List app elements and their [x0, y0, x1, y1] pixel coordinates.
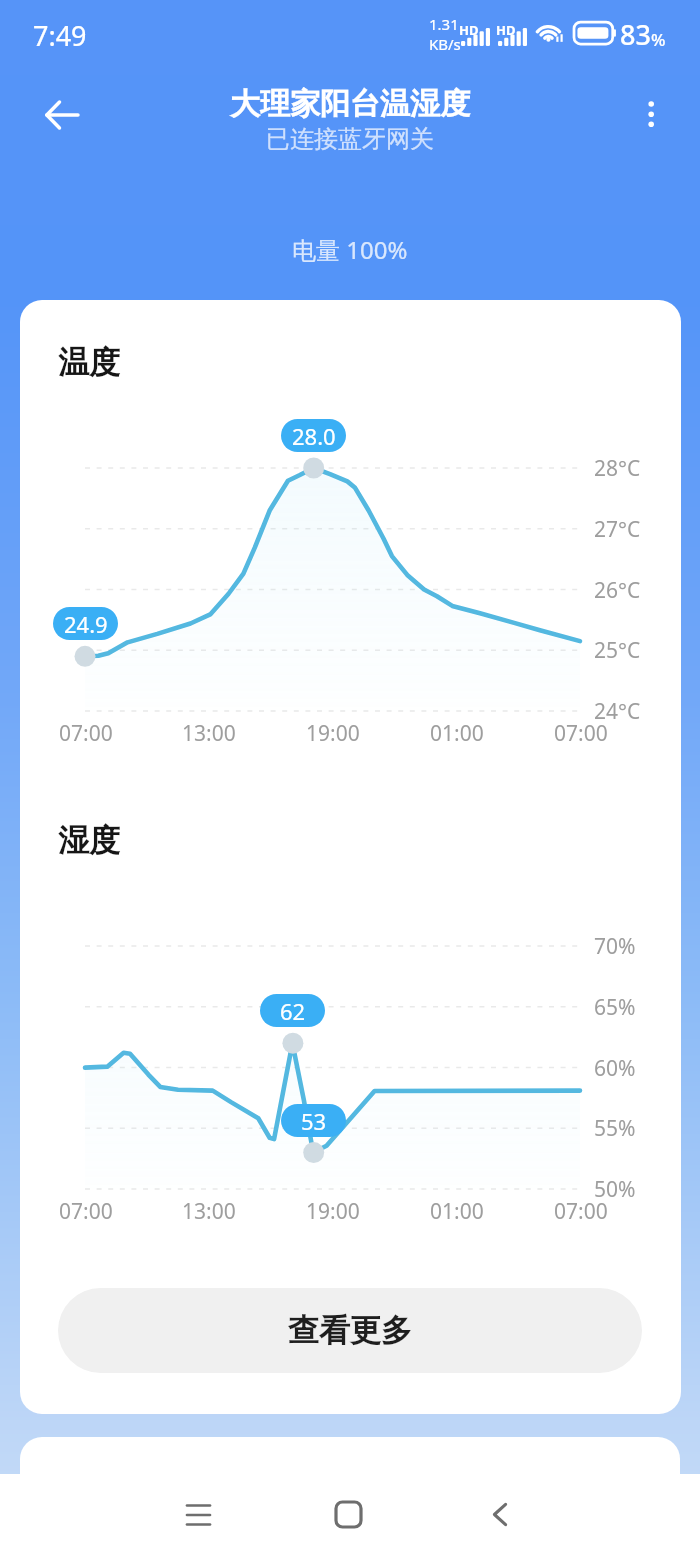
button[interactable]: Recents: [123, 1474, 273, 1555]
staticText: 13:00: [182, 719, 236, 748]
staticText: 53: [301, 1106, 327, 1136]
button[interactable]: 查看更多: [58, 1288, 642, 1373]
staticText: 60%: [594, 1054, 636, 1083]
staticText: 25°C: [594, 636, 641, 665]
button[interactable]: Back: [18, 85, 86, 145]
staticText: 24.9: [64, 609, 108, 639]
staticText: 55%: [594, 1114, 636, 1143]
staticText: HD: [459, 21, 479, 39]
staticText: 07:00: [59, 719, 113, 748]
staticText: 19:00: [306, 1197, 360, 1226]
staticText: 大理家阳台温湿度: [230, 85, 470, 123]
staticText: 01:00: [430, 719, 484, 748]
staticText: 28.0: [292, 421, 336, 451]
staticText: 62: [280, 996, 306, 1026]
staticText: 1.31: [429, 14, 459, 34]
staticText: 13:00: [182, 1197, 236, 1226]
staticText: 电量 100%: [292, 233, 408, 266]
staticText: 28°C: [594, 454, 641, 483]
staticText: 24°C: [594, 697, 641, 726]
button[interactable]: More options: [626, 84, 682, 144]
staticText: 27°C: [594, 515, 641, 544]
button[interactable]: Home: [273, 1474, 424, 1555]
button[interactable]: Back: [424, 1474, 575, 1555]
staticText: 65%: [594, 993, 636, 1022]
staticText: 70%: [594, 932, 636, 961]
staticText: 07:00: [554, 719, 608, 748]
staticText: 83: [620, 16, 651, 53]
staticText: 07:00: [59, 1197, 113, 1226]
staticText: 湿度: [58, 821, 120, 860]
staticText: 07:00: [554, 1197, 608, 1226]
staticText: 已连接蓝牙网关: [266, 124, 434, 154]
staticText: 7:49: [33, 17, 87, 54]
staticText: HD: [496, 21, 516, 39]
staticText: 50%: [594, 1175, 636, 1204]
staticText: 01:00: [430, 1197, 484, 1226]
staticText: 温度: [58, 343, 120, 382]
staticText: 查看更多: [288, 1311, 412, 1350]
staticText: %: [651, 28, 666, 51]
staticText: KB/s: [429, 34, 461, 54]
staticText: 26°C: [594, 576, 641, 605]
staticText: 19:00: [306, 719, 360, 748]
